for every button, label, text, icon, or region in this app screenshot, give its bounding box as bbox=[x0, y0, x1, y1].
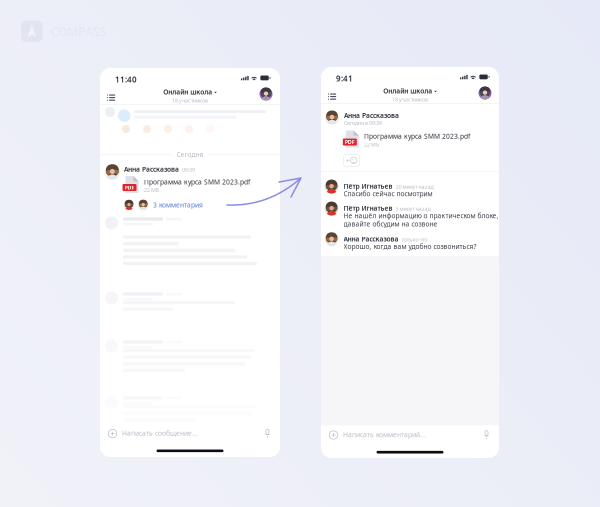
staticText: Написать сообщение... bbox=[122, 429, 198, 438]
button[interactable]: Voice message bbox=[262, 427, 272, 440]
staticText: Сегодня в 09:39 bbox=[344, 119, 382, 127]
staticText: PDF bbox=[345, 138, 355, 146]
staticText: Программа курса SMM 2023.pdf bbox=[144, 177, 250, 186]
staticText: Пётр Игнатьев bbox=[344, 204, 393, 213]
staticText: Спасибо сейчас посмотрим bbox=[344, 189, 433, 198]
staticText: Анна Рассказова bbox=[344, 234, 399, 243]
staticText: 20 минут назад bbox=[396, 183, 434, 190]
button[interactable]: Attach bbox=[327, 429, 339, 441]
button[interactable]: Channels bbox=[104, 92, 118, 103]
staticText: Написать комментарий... bbox=[343, 430, 426, 439]
staticText: Пётр Игнатьев bbox=[344, 182, 393, 191]
staticText: Онлайн школа bbox=[163, 87, 212, 96]
button[interactable]: Attach bbox=[106, 428, 118, 440]
button[interactable]: Add reaction bbox=[343, 154, 359, 166]
staticText: 11:40 bbox=[115, 74, 137, 85]
staticText: Программа курса SMM 2023.pdf bbox=[364, 132, 470, 141]
button[interactable]: My profile bbox=[478, 86, 491, 99]
button[interactable]: 3 комментария bbox=[124, 200, 202, 210]
button[interactable]: Онлайн школа bbox=[160, 87, 220, 104]
staticText: Хорошо, когда вам удобно созвониться? bbox=[344, 242, 477, 251]
button[interactable]: My profile bbox=[259, 87, 272, 100]
button[interactable]: Онлайн школа bbox=[380, 86, 440, 103]
staticText: PDF bbox=[124, 184, 134, 191]
staticText: 18 участников bbox=[392, 96, 428, 103]
staticText: 22 МБ bbox=[144, 186, 159, 194]
staticText: давайте обсудим на созвоне bbox=[344, 219, 438, 228]
staticText: + bbox=[346, 156, 350, 165]
staticText: Анна Рассказова bbox=[124, 165, 179, 174]
staticText: 5 минут назад bbox=[396, 205, 431, 212]
staticText: 3 комментария bbox=[153, 200, 203, 209]
staticText: Сегодня bbox=[176, 150, 203, 159]
staticText: 09:39 bbox=[182, 166, 195, 173]
staticText: 9:41 bbox=[336, 73, 353, 84]
button[interactable]: Voice message bbox=[481, 428, 491, 441]
staticText: только что bbox=[402, 236, 428, 243]
staticText: Анна Рассказова bbox=[344, 111, 399, 120]
staticText: Не нашёл информацию о практическом блоке… bbox=[344, 211, 499, 220]
staticText: 22 МБ bbox=[364, 141, 379, 148]
button[interactable]: Channels bbox=[325, 91, 339, 102]
staticText: Онлайн школа bbox=[383, 86, 432, 95]
staticText: 18 участников bbox=[172, 97, 208, 104]
